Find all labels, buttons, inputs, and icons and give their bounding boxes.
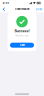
staticText: Done [19, 44, 24, 47]
staticText: Success! [14, 29, 29, 33]
staticText: Payment sent [15, 35, 28, 37]
button[interactable]: Back [1, 6, 7, 12]
button[interactable]: Done [10, 43, 34, 48]
staticText: Confirmation [15, 8, 29, 11]
button[interactable]: Done [34, 6, 43, 12]
staticText: 9:41 [3, 1, 9, 5]
staticText: Done [36, 8, 42, 11]
